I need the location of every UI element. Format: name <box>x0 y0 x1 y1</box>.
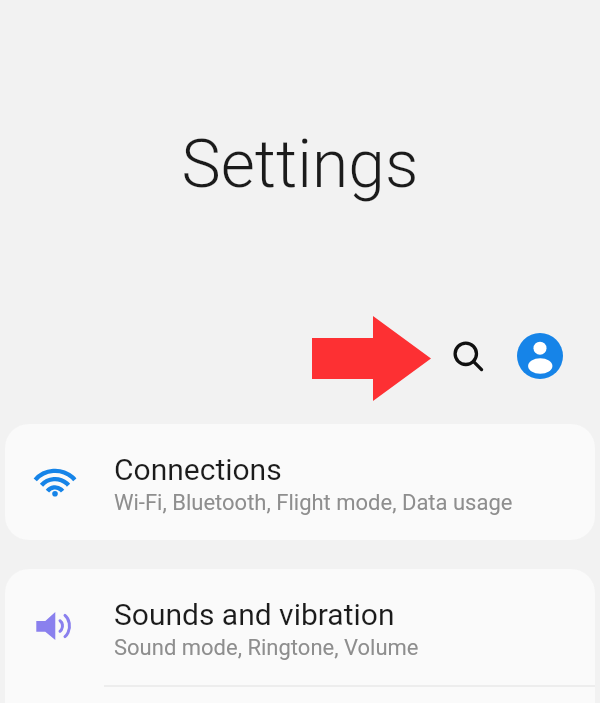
staticText: Settings <box>0 126 600 203</box>
button[interactable]: Search <box>448 336 496 384</box>
staticText: Sound mode, Ringtone, Volume <box>114 635 419 661</box>
staticText: Sounds and vibration <box>114 597 395 632</box>
button[interactable]: Account <box>517 333 563 379</box>
staticText: Connections <box>114 452 282 487</box>
button[interactable]: Connections <box>5 424 595 540</box>
button[interactable]: Sounds and vibration <box>5 569 595 685</box>
staticText: Wi-Fi, Bluetooth, Flight mode, Data usag… <box>114 490 513 516</box>
